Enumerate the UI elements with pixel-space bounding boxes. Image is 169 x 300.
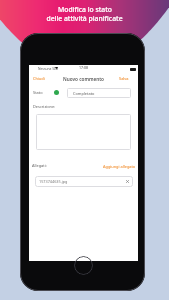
button[interactable]: Completato bbox=[67, 88, 131, 98]
staticText: Nuovo commento bbox=[63, 76, 104, 82]
staticText: Allegati: bbox=[32, 163, 47, 168]
button[interactable] bbox=[36, 114, 131, 150]
staticText: Stato bbox=[33, 90, 43, 95]
staticText: Chiudi bbox=[33, 76, 45, 81]
staticText: Descrizione: bbox=[33, 104, 56, 109]
staticText: Salva bbox=[119, 76, 129, 81]
staticText: delle attività pianificate bbox=[46, 14, 123, 23]
staticText: 17:08 bbox=[79, 65, 88, 70]
staticText: Completato bbox=[73, 91, 95, 96]
staticText: 1573744635.jpg bbox=[39, 179, 68, 184]
button[interactable]: Salva bbox=[115, 72, 138, 84]
staticText: Modifica lo stato bbox=[58, 5, 112, 14]
button[interactable]: Rimuovi allegato bbox=[124, 178, 131, 185]
staticText: Nessuna SIM bbox=[38, 66, 59, 70]
button[interactable]: Chiudi bbox=[29, 72, 49, 84]
button[interactable]: Aggiungi allegato bbox=[103, 164, 136, 169]
